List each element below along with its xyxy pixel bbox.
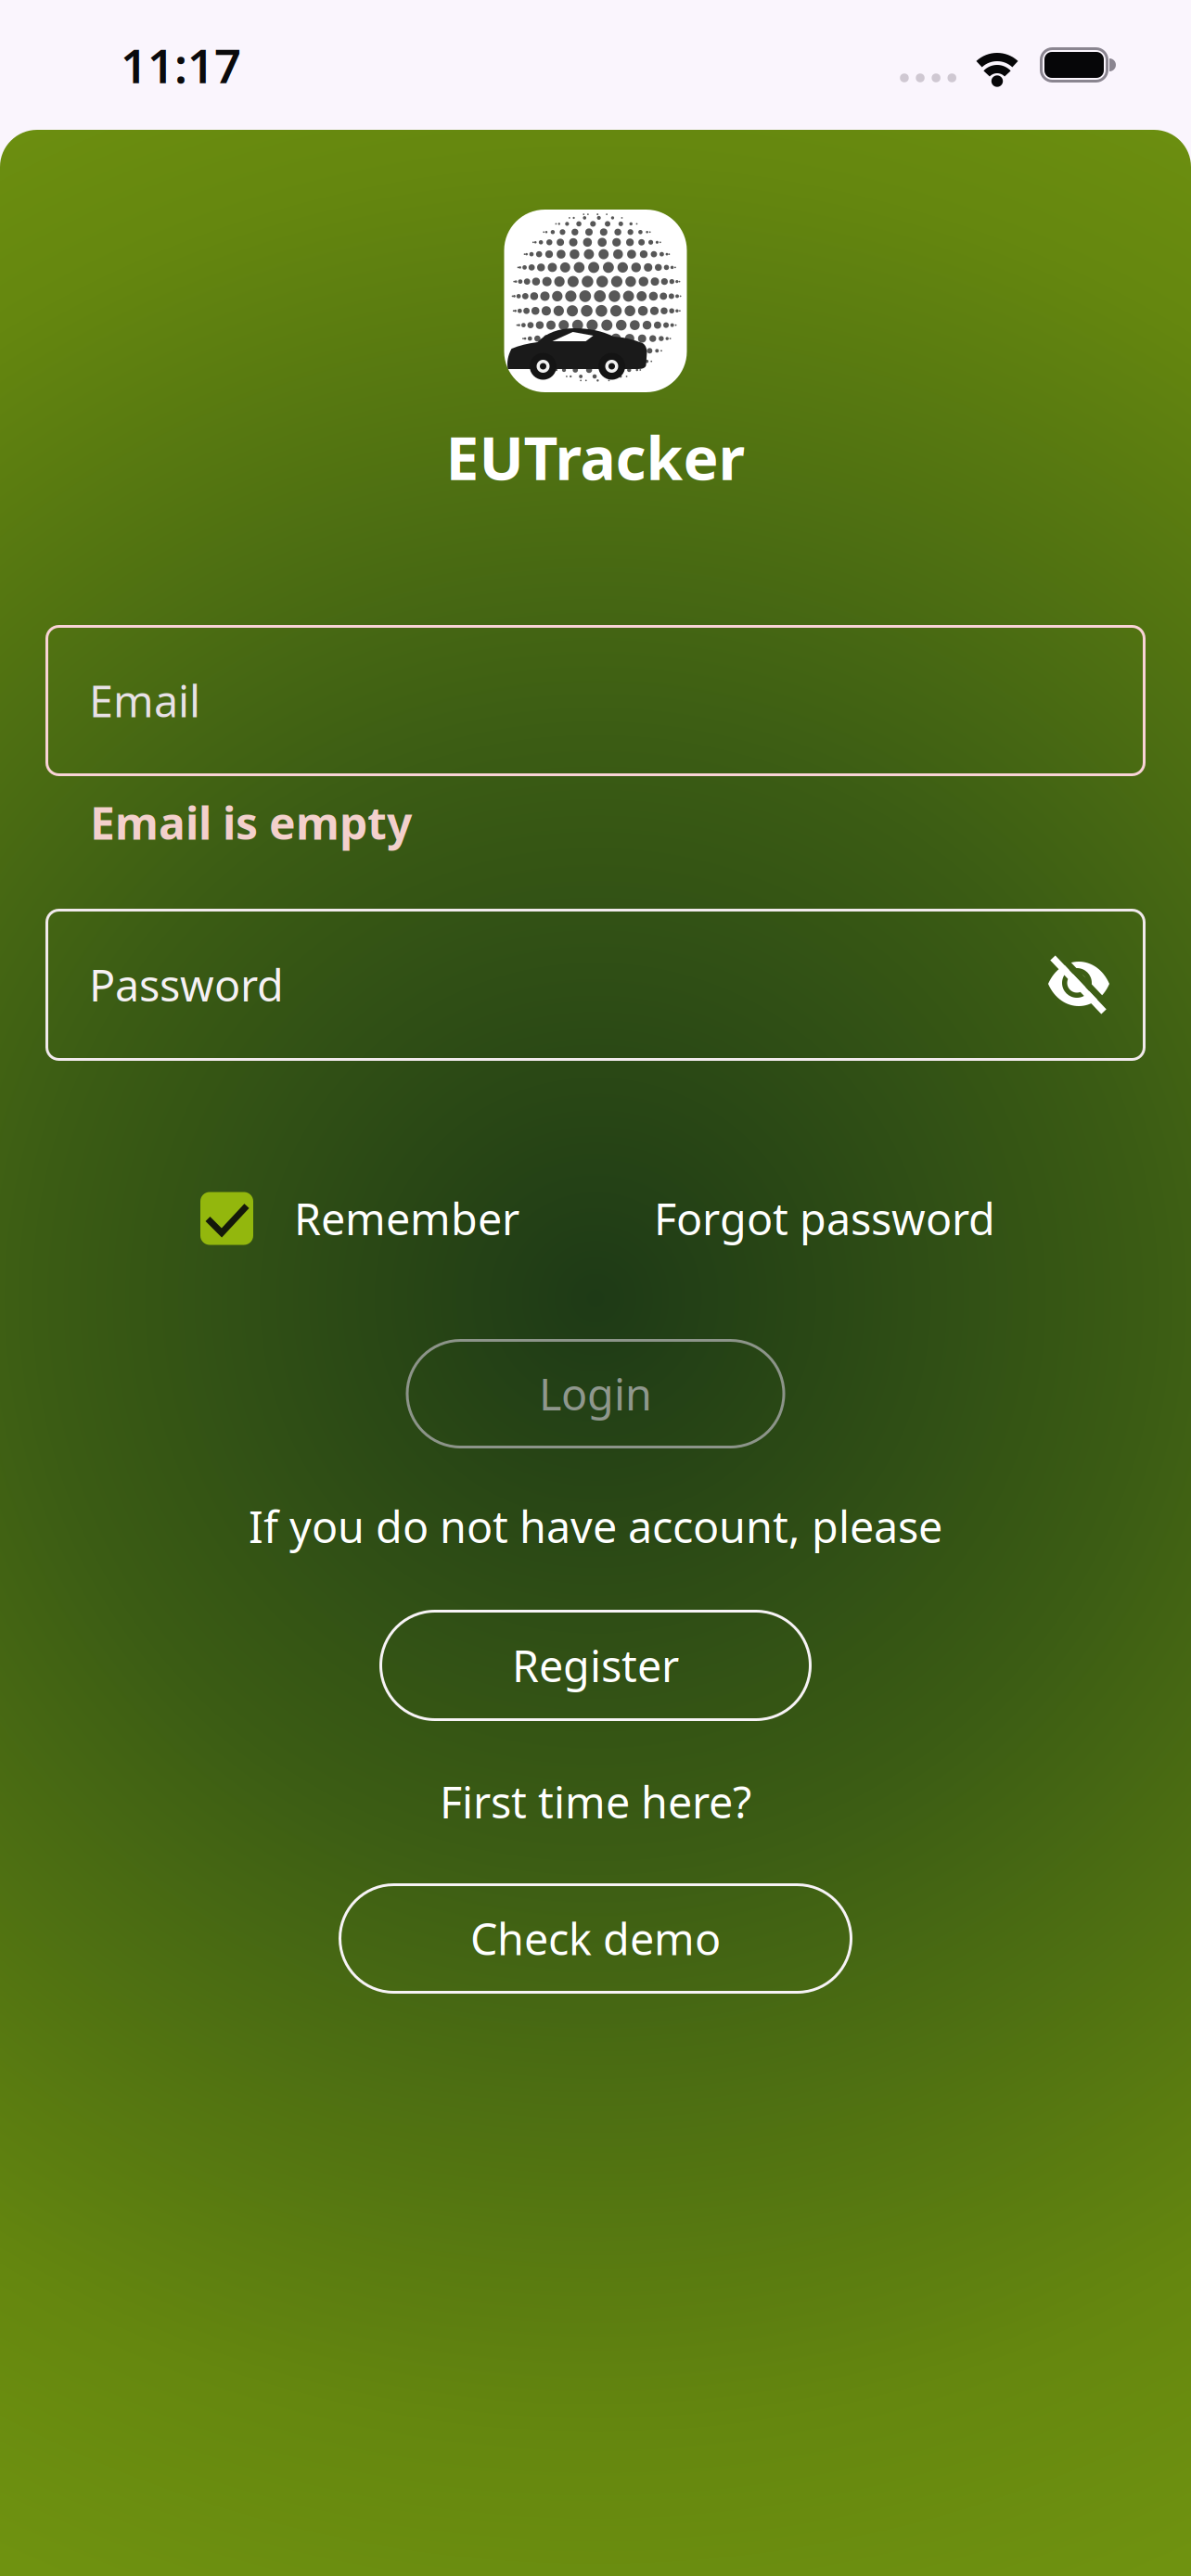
staticText: Login	[539, 1365, 652, 1422]
staticText: EUTracker	[446, 418, 745, 497]
staticText: 11:17	[121, 34, 241, 96]
button[interactable]: Register	[379, 1610, 812, 1721]
button[interactable]: Login	[406, 1339, 785, 1448]
button[interactable]: Show password	[1048, 958, 1109, 1012]
staticText: Check demo	[470, 1910, 721, 1967]
button[interactable]: Remember	[200, 1190, 519, 1247]
staticText: Forgot password	[654, 1190, 995, 1247]
staticText: Register	[512, 1637, 679, 1694]
staticText: Email is empty	[90, 793, 412, 852]
staticText: Remember	[294, 1190, 519, 1247]
button[interactable]: Check demo	[339, 1883, 852, 1994]
button[interactable]: Forgot password	[654, 1190, 995, 1247]
staticText: First time here?	[440, 1773, 751, 1830]
staticText: If you do not have account, please	[249, 1498, 942, 1555]
staticText: Password	[89, 956, 284, 1014]
staticText: Email	[89, 672, 200, 729]
